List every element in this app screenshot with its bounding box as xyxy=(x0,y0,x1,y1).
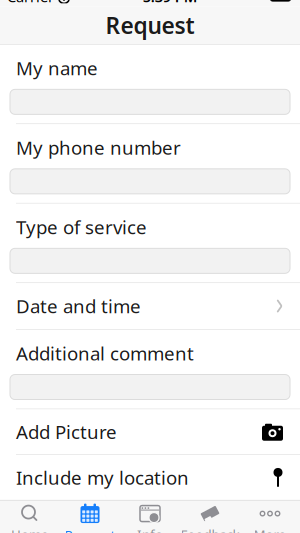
staticText: My name xyxy=(16,56,98,80)
staticText: Date and time xyxy=(16,294,141,318)
staticText: Additional comment xyxy=(16,341,194,365)
staticText: My phone number xyxy=(16,135,181,160)
button[interactable]: More xyxy=(240,500,300,533)
staticText: 5:39 PM xyxy=(143,0,198,6)
staticText: Include my location xyxy=(16,465,189,490)
button[interactable]: Date and time xyxy=(0,283,300,329)
staticText: Feedback xyxy=(180,526,239,533)
button[interactable] xyxy=(0,89,300,114)
staticText: More xyxy=(253,526,286,533)
button[interactable]: Add Picture xyxy=(0,409,300,454)
staticText: Type of service xyxy=(16,215,147,239)
button[interactable] xyxy=(0,248,300,273)
button[interactable] xyxy=(0,374,300,399)
staticText: Info xyxy=(137,526,163,533)
button[interactable]: Home xyxy=(0,500,60,533)
staticText: Add Picture xyxy=(16,419,117,444)
staticText: Request xyxy=(64,526,115,533)
staticText: Request xyxy=(105,10,194,40)
button[interactable]: Request xyxy=(60,500,120,533)
staticText: Home xyxy=(11,526,49,533)
button[interactable]: Info xyxy=(120,500,180,533)
staticText: Carrier xyxy=(7,0,54,6)
button[interactable]: Feedback xyxy=(180,500,240,533)
button[interactable] xyxy=(0,169,300,194)
button[interactable]: Include my location xyxy=(0,455,300,500)
